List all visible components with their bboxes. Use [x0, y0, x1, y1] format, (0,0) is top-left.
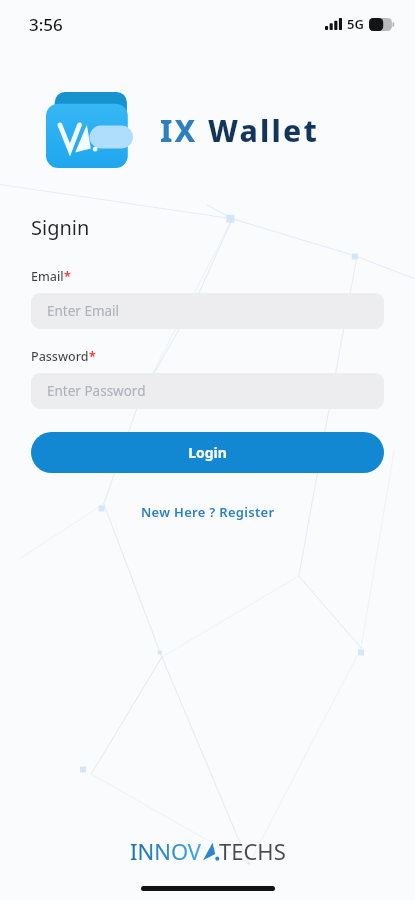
- staticText: Enter Email: [47, 302, 120, 320]
- staticText: TECHS: [219, 836, 286, 866]
- staticText: Email: [31, 268, 64, 285]
- button[interactable]: New Here ? Register: [31, 503, 384, 521]
- staticText: Enter Password: [47, 382, 146, 400]
- staticText: 5G: [347, 15, 364, 33]
- staticText: *: [64, 268, 71, 285]
- other: Innovatechs: [130, 836, 286, 866]
- staticText: 3:56: [29, 13, 63, 36]
- staticText: New Here ? Register: [141, 503, 275, 521]
- button[interactable]: Enter Email: [31, 293, 384, 329]
- staticText: Wallet: [208, 110, 320, 151]
- button[interactable]: Login: [31, 432, 384, 473]
- staticText: Password: [31, 348, 89, 365]
- staticText: INNOV: [130, 836, 202, 866]
- button[interactable]: Enter Password: [31, 373, 384, 409]
- staticText: IX: [160, 110, 208, 151]
- staticText: Login: [188, 443, 227, 462]
- staticText: Signin: [31, 214, 90, 241]
- staticText: *: [89, 348, 96, 365]
